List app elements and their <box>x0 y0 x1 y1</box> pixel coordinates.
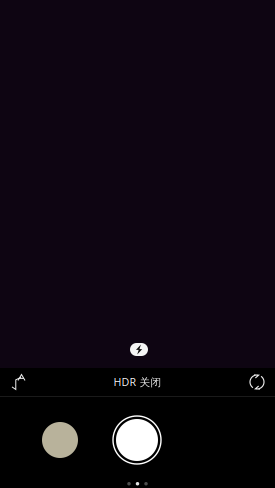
button[interactable]: Take photo <box>107 410 167 470</box>
button[interactable]: Photo library <box>33 413 87 467</box>
button[interactable]: Flash mode <box>130 343 148 356</box>
button[interactable]: Switch camera <box>239 368 275 396</box>
button[interactable]: Flash auto <box>0 368 36 396</box>
staticText: HDR 关闭 <box>113 375 161 389</box>
button[interactable]: HDR 关闭 <box>113 368 161 396</box>
